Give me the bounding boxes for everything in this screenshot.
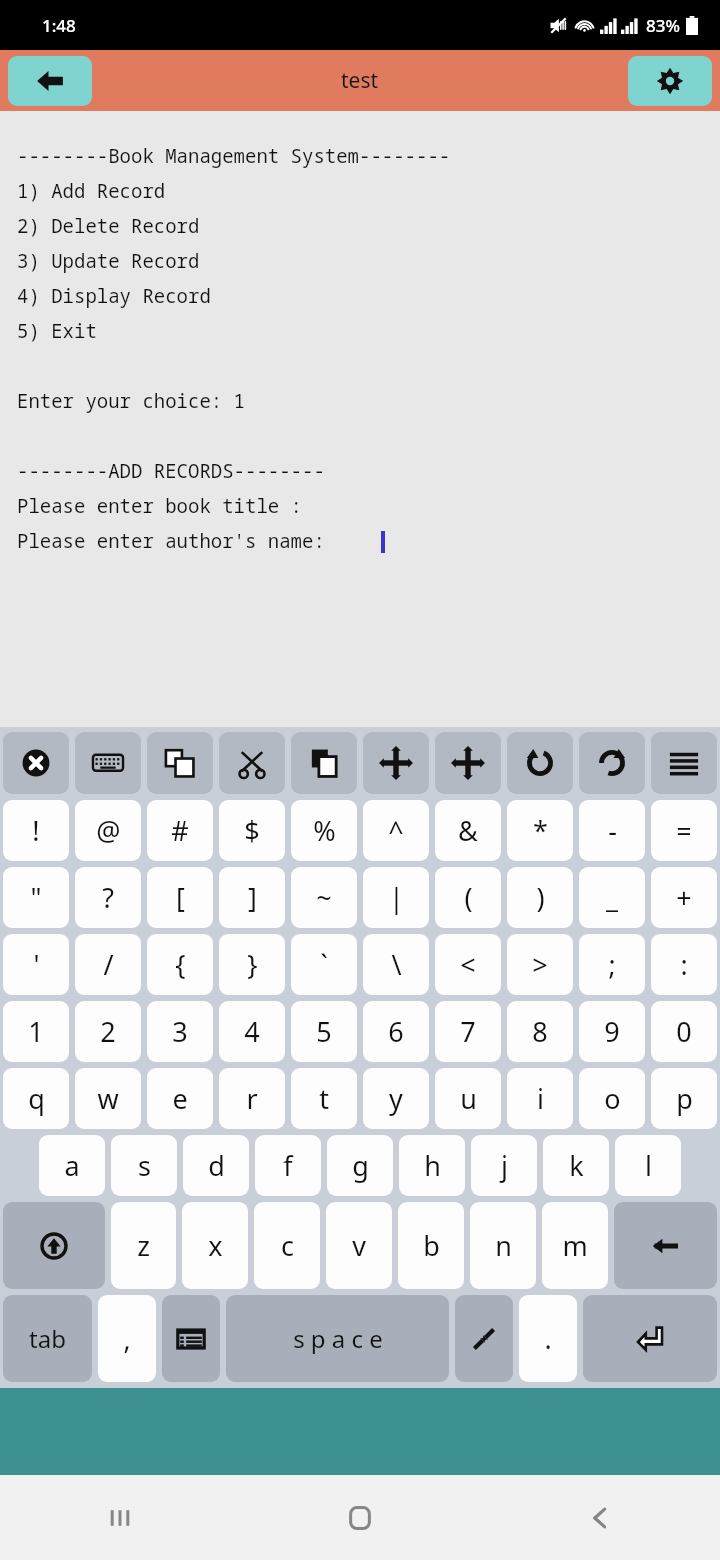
button[interactable]: t: [291, 1068, 357, 1129]
button[interactable]: 3: [147, 1001, 213, 1062]
button[interactable]: a: [39, 1135, 105, 1196]
button[interactable]: (: [435, 867, 501, 928]
button[interactable]: 1: [3, 1001, 69, 1062]
staticText: [: [176, 879, 185, 916]
button[interactable]: u: [435, 1068, 501, 1129]
button[interactable]: =: [651, 800, 717, 861]
button[interactable]: move2: [435, 732, 501, 794]
button[interactable]: cut: [219, 732, 285, 794]
button[interactable]: }: [219, 934, 285, 995]
staticText: ,: [123, 1320, 131, 1357]
button[interactable]: i: [507, 1068, 573, 1129]
button[interactable]: redo: [579, 732, 645, 794]
button[interactable]: :: [651, 934, 717, 995]
button[interactable]: x: [182, 1202, 248, 1289]
button[interactable]: bksp: [614, 1202, 717, 1289]
button[interactable]: kb: [75, 732, 141, 794]
button[interactable]: @: [75, 800, 141, 861]
button[interactable]: m: [542, 1202, 608, 1289]
button[interactable]: paste: [291, 732, 357, 794]
button[interactable]: <: [435, 934, 501, 995]
button[interactable]: copy2: [147, 732, 213, 794]
button[interactable]: ): [507, 867, 573, 928]
button[interactable]: +: [651, 867, 717, 928]
button[interactable]: Recents: [0, 1475, 240, 1560]
button[interactable]: p: [651, 1068, 717, 1129]
button[interactable]: 9: [579, 1001, 645, 1062]
button[interactable]: list: [162, 1295, 220, 1382]
button[interactable]: |: [363, 867, 429, 928]
staticText: +: [676, 879, 692, 916]
button[interactable]: ": [3, 867, 69, 928]
button[interactable]: tab: [3, 1295, 92, 1382]
button[interactable]: 2: [75, 1001, 141, 1062]
staticText: :: [680, 946, 688, 983]
button[interactable]: Settings: [628, 56, 712, 106]
button[interactable]: 4: [219, 1001, 285, 1062]
button[interactable]: s p a c e: [226, 1295, 449, 1382]
button[interactable]: Back: [480, 1475, 720, 1560]
button[interactable]: /: [75, 934, 141, 995]
staticText: 4: [244, 1013, 260, 1050]
button[interactable]: &: [435, 800, 501, 861]
staticText: ^: [388, 812, 404, 849]
button[interactable]: menu: [651, 732, 717, 794]
button[interactable]: move1: [363, 732, 429, 794]
button[interactable]: undo: [507, 732, 573, 794]
button[interactable]: s: [111, 1135, 177, 1196]
button[interactable]: shift: [3, 1202, 105, 1289]
button[interactable]: close: [3, 732, 69, 794]
button[interactable]: `: [291, 934, 357, 995]
button[interactable]: enter: [583, 1295, 717, 1382]
staticText: _: [606, 879, 618, 916]
button[interactable]: ': [3, 934, 69, 995]
button[interactable]: c: [254, 1202, 320, 1289]
button[interactable]: 0: [651, 1001, 717, 1062]
button[interactable]: 5: [291, 1001, 357, 1062]
button[interactable]: ;: [579, 934, 645, 995]
button[interactable]: d: [183, 1135, 249, 1196]
button[interactable]: 8: [507, 1001, 573, 1062]
staticText: 6: [388, 1013, 404, 1050]
button[interactable]: ?: [75, 867, 141, 928]
button[interactable]: f: [255, 1135, 321, 1196]
button[interactable]: l: [615, 1135, 681, 1196]
button[interactable]: r: [219, 1068, 285, 1129]
button[interactable]: #: [147, 800, 213, 861]
button[interactable]: y: [363, 1068, 429, 1129]
button[interactable]: ]: [219, 867, 285, 928]
button[interactable]: $: [219, 800, 285, 861]
button[interactable]: %: [291, 800, 357, 861]
button[interactable]: >: [507, 934, 573, 995]
button[interactable]: -: [579, 800, 645, 861]
button[interactable]: {: [147, 934, 213, 995]
button[interactable]: e: [147, 1068, 213, 1129]
button[interactable]: n: [470, 1202, 536, 1289]
button[interactable]: Back: [8, 56, 92, 106]
button[interactable]: .: [519, 1295, 577, 1382]
button[interactable]: v: [326, 1202, 392, 1289]
button[interactable]: z: [111, 1202, 176, 1289]
button[interactable]: h: [399, 1135, 465, 1196]
button[interactable]: 6: [363, 1001, 429, 1062]
button[interactable]: q: [3, 1068, 69, 1129]
button[interactable]: g: [327, 1135, 393, 1196]
button[interactable]: ,: [98, 1295, 156, 1382]
button[interactable]: o: [579, 1068, 645, 1129]
button[interactable]: *: [507, 800, 573, 861]
button[interactable]: \: [363, 934, 429, 995]
button[interactable]: ^: [363, 800, 429, 861]
button[interactable]: 7: [435, 1001, 501, 1062]
button[interactable]: Home: [240, 1475, 480, 1560]
button[interactable]: shrink: [455, 1295, 513, 1382]
button[interactable]: _: [579, 867, 645, 928]
button[interactable]: !: [3, 800, 69, 861]
button[interactable]: k: [543, 1135, 609, 1196]
staticText: p: [676, 1080, 693, 1117]
button[interactable]: ~: [291, 867, 357, 928]
staticText: *: [533, 812, 548, 849]
button[interactable]: [: [147, 867, 213, 928]
button[interactable]: b: [398, 1202, 464, 1289]
button[interactable]: j: [471, 1135, 537, 1196]
button[interactable]: w: [75, 1068, 141, 1129]
